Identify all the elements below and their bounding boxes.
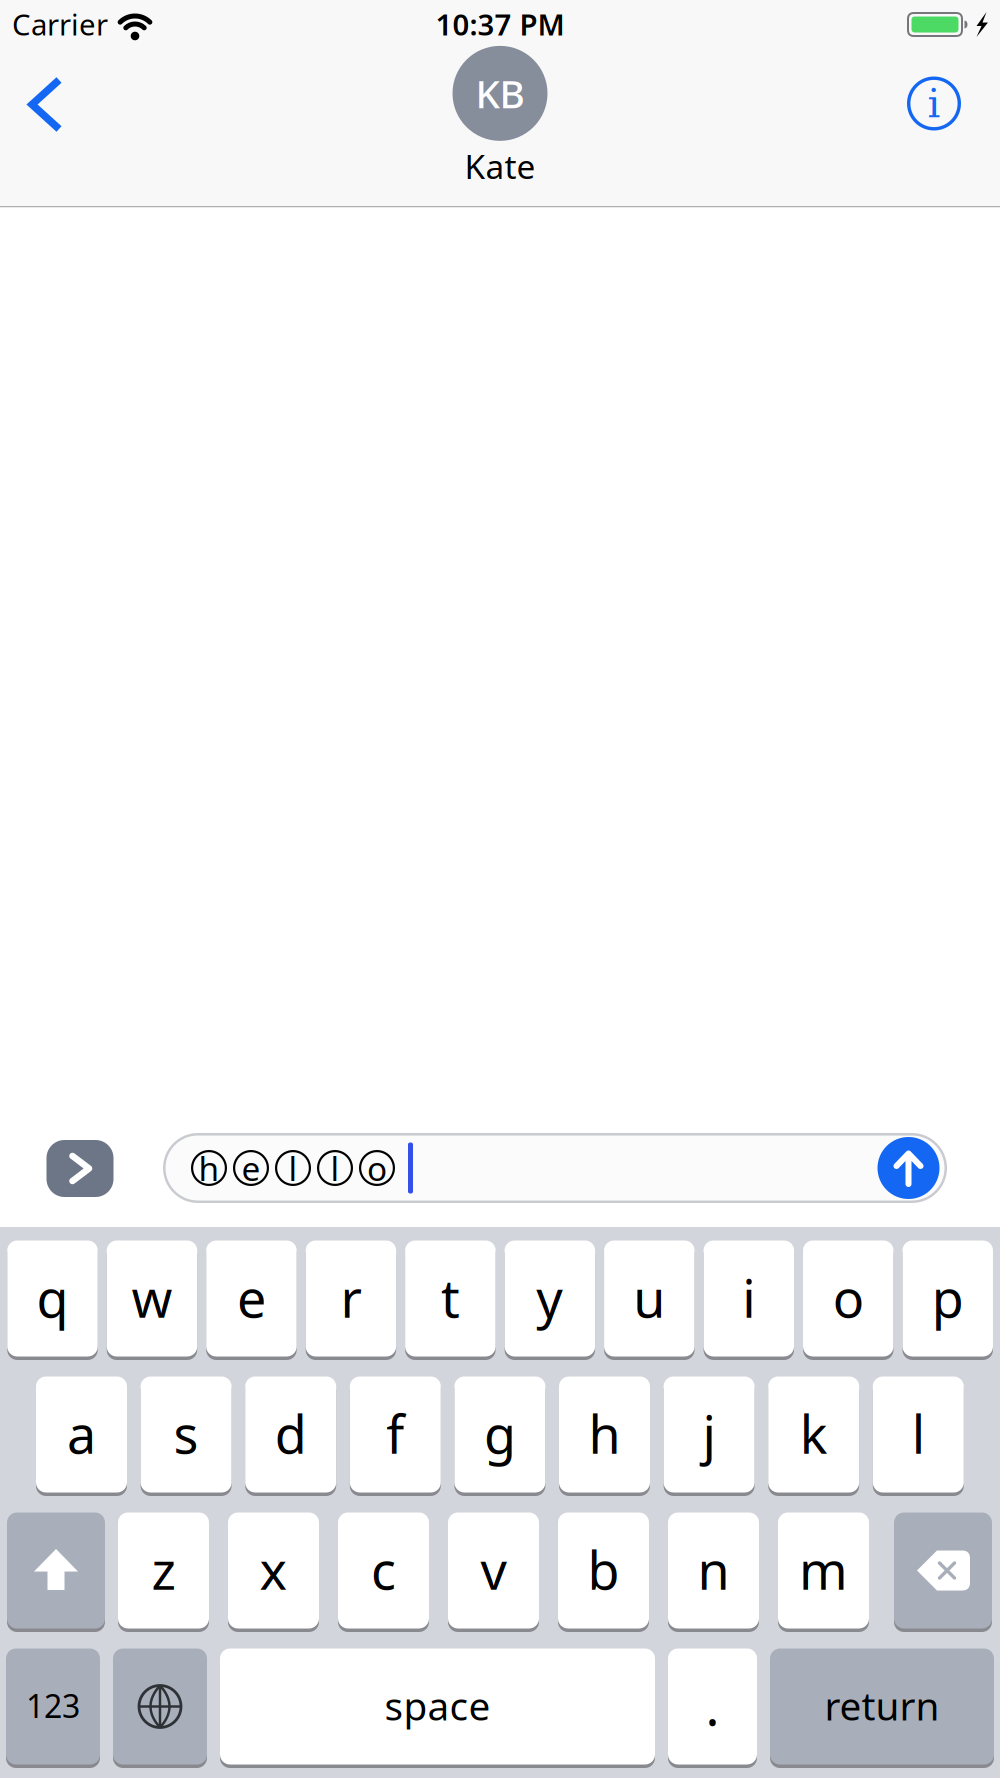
button[interactable]: t	[405, 1240, 496, 1356]
staticText: j	[703, 1399, 716, 1468]
button[interactable]: y	[505, 1240, 595, 1356]
staticText: x	[259, 1535, 287, 1604]
staticText: space	[384, 1680, 490, 1731]
staticText: g	[484, 1399, 516, 1468]
staticText: p	[932, 1263, 964, 1332]
button[interactable]: c	[338, 1512, 429, 1628]
staticText: t	[441, 1263, 460, 1332]
button[interactable]: m	[778, 1512, 869, 1628]
button[interactable]: return	[770, 1648, 994, 1764]
staticText: f	[386, 1399, 404, 1468]
button[interactable]: KB	[452, 46, 547, 188]
button[interactable]: l	[873, 1376, 964, 1492]
staticText: .	[705, 1671, 719, 1740]
staticText: Kate	[464, 144, 535, 188]
staticText: l	[330, 1146, 339, 1190]
button[interactable]: Delete	[894, 1512, 992, 1628]
button[interactable]: j	[664, 1376, 755, 1492]
staticText: e	[241, 1146, 260, 1190]
button[interactable]: o	[803, 1240, 893, 1356]
staticText: d	[275, 1399, 307, 1468]
button[interactable]: u	[604, 1240, 695, 1356]
button[interactable]: 123	[6, 1648, 100, 1764]
staticText: b	[587, 1535, 619, 1604]
button[interactable]: v	[448, 1512, 539, 1628]
staticText: k	[800, 1399, 828, 1468]
button[interactable]: p	[902, 1240, 993, 1356]
staticText: z	[151, 1535, 175, 1604]
staticText: KB	[475, 68, 524, 119]
staticText: i	[927, 80, 940, 127]
button[interactable]: space	[220, 1648, 655, 1764]
staticText: h	[588, 1399, 620, 1468]
button[interactable]: a	[36, 1376, 127, 1492]
button[interactable]: x	[228, 1512, 319, 1628]
button[interactable]: g	[454, 1376, 545, 1492]
button[interactable]: d	[245, 1376, 336, 1492]
staticText: o	[367, 1146, 387, 1190]
button[interactable]: e	[206, 1240, 297, 1356]
staticText: 123	[26, 1684, 80, 1727]
staticText: r	[340, 1263, 361, 1332]
staticText: y	[536, 1263, 563, 1332]
staticText: s	[174, 1399, 199, 1468]
button[interactable]: Back	[15, 69, 75, 140]
staticText: a	[67, 1399, 96, 1468]
button[interactable]: i	[703, 1240, 794, 1356]
staticText: Carrier	[12, 4, 108, 43]
button[interactable]: b	[558, 1512, 649, 1628]
button[interactable]: Next keyboard	[113, 1648, 207, 1764]
staticText: return	[824, 1680, 939, 1731]
button[interactable]: Send	[877, 1137, 939, 1199]
staticText: o	[833, 1263, 864, 1332]
button[interactable]: w	[107, 1240, 197, 1356]
staticText: v	[480, 1535, 506, 1604]
staticText: q	[36, 1263, 68, 1332]
button[interactable]: Shift	[7, 1512, 105, 1628]
button[interactable]: Details	[903, 72, 965, 134]
staticText: l	[912, 1399, 925, 1468]
button[interactable]: z	[118, 1512, 209, 1628]
button[interactable]: q	[7, 1240, 98, 1356]
button[interactable]: k	[768, 1376, 859, 1492]
staticText: n	[697, 1535, 729, 1604]
staticText: u	[633, 1263, 665, 1332]
button[interactable]: n	[668, 1512, 759, 1628]
staticText: c	[371, 1535, 396, 1604]
staticText: h	[198, 1146, 219, 1190]
button[interactable]: r	[306, 1240, 396, 1356]
staticText: 10:37 PM	[435, 4, 564, 43]
staticText: i	[742, 1263, 755, 1332]
button[interactable]: Message field	[163, 1133, 947, 1203]
button[interactable]: h	[559, 1376, 650, 1492]
button[interactable]: Expand	[46, 1140, 113, 1197]
staticText: l	[288, 1146, 297, 1190]
button[interactable]: f	[350, 1376, 441, 1492]
staticText: m	[799, 1535, 848, 1604]
button[interactable]: s	[141, 1376, 232, 1492]
staticText: e	[237, 1263, 266, 1332]
button[interactable]: .	[668, 1648, 757, 1764]
staticText: w	[131, 1263, 172, 1332]
